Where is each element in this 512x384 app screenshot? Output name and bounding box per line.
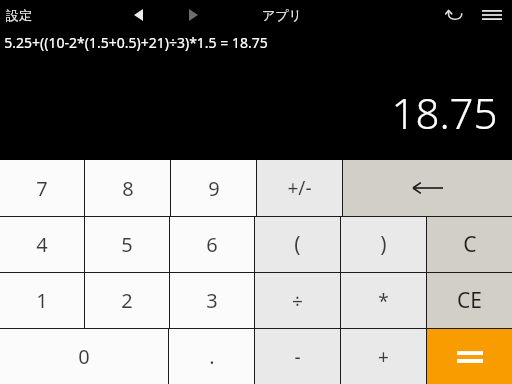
button[interactable]: 3 xyxy=(170,273,254,328)
button[interactable]: * xyxy=(341,273,426,328)
button[interactable]: 設定 xyxy=(0,0,42,30)
staticText: ÷ xyxy=(292,288,303,314)
button[interactable]: 6 xyxy=(170,217,254,272)
button[interactable]: 9 xyxy=(171,160,256,216)
staticText: アプリ xyxy=(262,7,302,23)
button[interactable]: C xyxy=(427,217,512,272)
staticText: ( xyxy=(294,230,301,259)
button[interactable]: Next xyxy=(179,0,207,30)
button[interactable]: 1 xyxy=(0,273,84,328)
staticText: 0 xyxy=(78,343,90,370)
staticText: 3 xyxy=(206,287,218,314)
button[interactable]: ÷ xyxy=(255,273,340,328)
button[interactable]: 5 xyxy=(85,217,169,272)
button[interactable]: . xyxy=(169,329,254,384)
staticText: 1 xyxy=(36,287,48,314)
staticText: - xyxy=(294,344,301,370)
staticText: 2 xyxy=(121,287,133,314)
button[interactable]: Equals xyxy=(427,329,512,384)
button[interactable]: Backspace xyxy=(343,160,512,216)
button[interactable]: +/- xyxy=(257,160,342,216)
staticText: C xyxy=(463,230,477,259)
button[interactable]: Menu xyxy=(476,0,508,30)
staticText: * xyxy=(378,288,389,314)
staticText: . xyxy=(209,343,215,370)
button[interactable]: Previous xyxy=(124,0,152,30)
button[interactable]: 0 xyxy=(0,329,168,384)
button[interactable]: 4 xyxy=(0,217,84,272)
staticText: 5 xyxy=(121,231,133,258)
staticText: + xyxy=(378,344,389,370)
staticText: 5.25+((10-2*(1.5+0.5)+21)÷3)*1.5 = 18.75 xyxy=(4,33,268,52)
button[interactable]: CE xyxy=(427,273,512,328)
staticText: 6 xyxy=(206,231,218,258)
staticText: 7 xyxy=(36,175,48,202)
staticText: 18.75 xyxy=(391,84,498,141)
button[interactable]: - xyxy=(255,329,340,384)
button[interactable]: ( xyxy=(255,217,340,272)
button[interactable]: 8 xyxy=(85,160,170,216)
button[interactable]: + xyxy=(341,329,426,384)
button[interactable]: Undo xyxy=(440,0,470,30)
button[interactable]: ) xyxy=(341,217,426,272)
staticText: 8 xyxy=(122,175,134,202)
staticText: CE xyxy=(457,286,482,315)
button[interactable]: 7 xyxy=(0,160,84,216)
staticText: 設定 xyxy=(6,7,32,23)
staticText: 9 xyxy=(208,175,220,202)
button[interactable]: アプリ xyxy=(262,0,302,30)
staticText: ) xyxy=(380,230,387,259)
staticText: +/- xyxy=(287,175,312,201)
button[interactable]: 2 xyxy=(85,273,169,328)
staticText: 4 xyxy=(36,231,48,258)
